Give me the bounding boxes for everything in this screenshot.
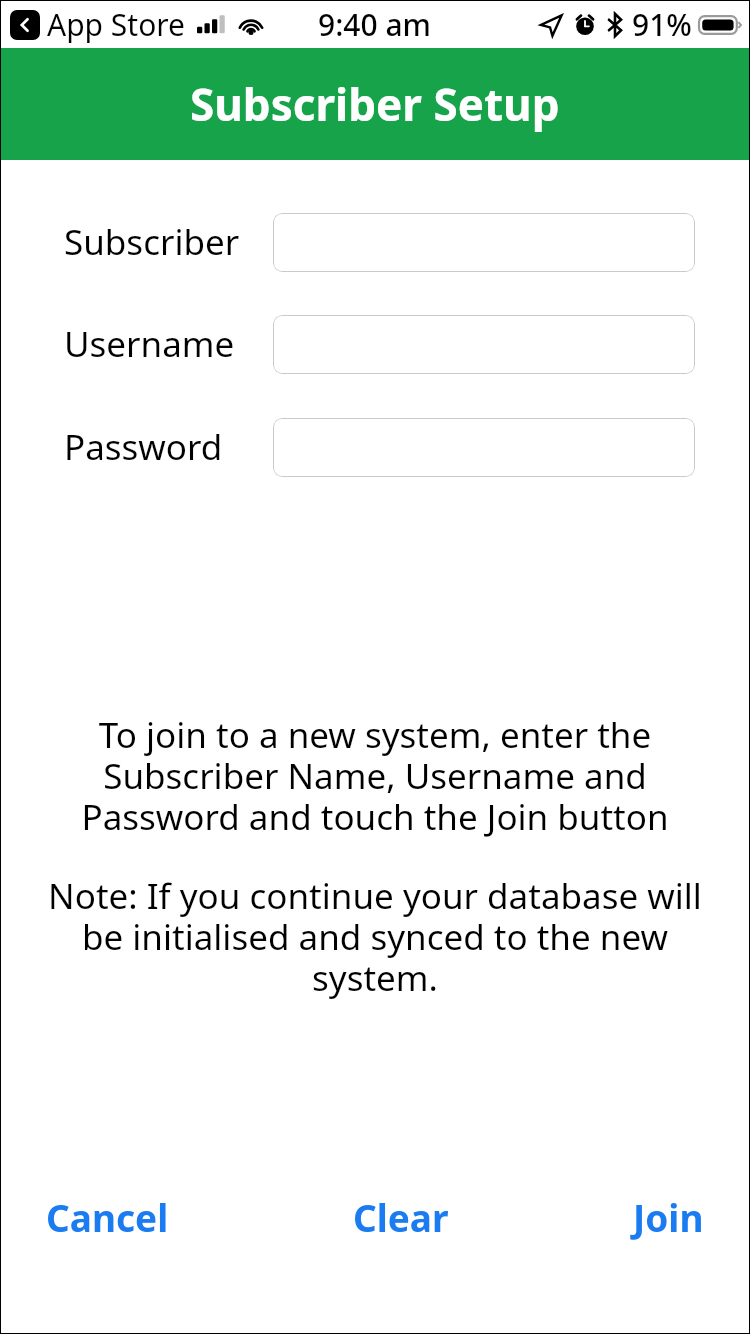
button[interactable]: Join — [621, 1184, 716, 1250]
staticText: Subscriber Setup — [190, 74, 560, 134]
button[interactable]: Password — [273, 418, 695, 477]
staticText: To join to a new system, enter the Subsc… — [24, 711, 726, 840]
staticText: 91% — [632, 4, 692, 45]
staticText: 9:40 am — [318, 4, 432, 45]
staticText: Note: If you continue your database will… — [24, 872, 726, 1001]
button[interactable]: Subscriber — [273, 213, 695, 272]
staticText: Username — [64, 320, 235, 368]
staticText: App Store — [47, 4, 186, 45]
button[interactable]: Username — [273, 315, 695, 374]
staticText: Password — [64, 423, 223, 471]
staticText: Subscriber — [64, 218, 240, 266]
button[interactable]: Cancel — [34, 1184, 181, 1250]
staticText: Cancel — [46, 1192, 169, 1242]
button[interactable]: Clear — [341, 1184, 461, 1250]
staticText: Clear — [353, 1192, 449, 1242]
staticText: Join — [633, 1192, 704, 1242]
